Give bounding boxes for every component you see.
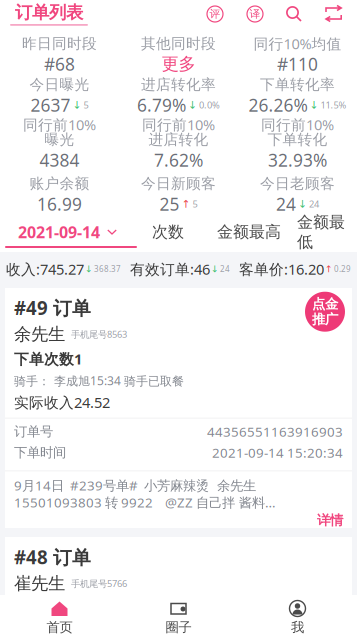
staticText: 26.26% [248,93,307,116]
button[interactable]: 次数 [152,212,217,252]
staticText: 11.5% [320,99,346,111]
staticText: 余先生 [14,324,65,345]
button[interactable]: 刷新 [325,6,342,22]
staticText: 进店转化率 [141,75,216,93]
staticText: 其他同时段 [141,34,216,52]
staticText: ↓ [309,99,318,111]
staticText: 进店转化 [148,130,208,148]
staticText: 7.62% [154,148,203,171]
staticText: 次数 [152,222,184,242]
staticText: 骑手： 李成旭15:34 骑手已取餐 [14,373,184,389]
staticText: 客单价:16.20 [239,259,324,279]
staticText: 24 [276,192,296,215]
staticText: 手机尾号5766 [71,577,127,590]
staticText: 首页 [46,619,72,635]
staticText: 2637 [30,93,70,116]
staticText: 今日新顾客 [141,174,216,192]
button[interactable]: 评价 [205,4,225,24]
staticText: 24 [309,198,319,210]
staticText: 5 [192,198,197,210]
staticText: 译 [249,7,260,20]
staticText: 同行前10% [23,115,96,134]
staticText: 下单转化率 [260,75,335,93]
button[interactable]: #49 订单 [5,288,352,528]
staticText: 25 [159,192,179,215]
staticText: 下单时间 [14,444,66,461]
staticText: 账户余额 [29,174,89,192]
staticText: 2021-09-14 15:20:34 [212,444,343,461]
staticText: 16.99 [37,192,82,215]
staticText: 昨日同时段 [22,34,97,52]
staticText: 15501093803 转 9922 @ZZ 自己拌 酱料… [14,493,276,511]
staticText: 同行10%均值 [253,34,341,53]
staticText: 曝光 [44,130,74,148]
button[interactable]: 2021-09-14 [0,212,152,252]
staticText: 32.93% [268,148,327,171]
staticText: 订单号 [14,423,53,440]
staticText: 今日老顾客 [260,174,335,192]
staticText: ↓ [72,99,81,111]
staticText: 今日曝光 [29,75,89,93]
staticText: 同行前10% [261,115,334,134]
staticText: 圈子 [165,619,191,635]
button[interactable]: 首页 [0,595,119,639]
button[interactable]: 金额最低 [297,212,357,252]
staticText: 实际收入24.52 [14,392,110,412]
staticText: #110 [277,52,318,75]
button[interactable]: 搜索 [285,5,303,23]
button[interactable]: 圈子 [119,595,238,639]
staticText: 有效订单:46 [130,259,210,279]
staticText: 金额最高 [217,222,281,242]
staticText: 收入:745.27 [6,259,84,279]
button[interactable]: #48 订单 [5,537,352,595]
staticText: ↑ [181,198,190,210]
staticText: #48 订单 [14,545,91,569]
staticText: 44356551163916903 [207,423,343,440]
staticText: 详情 [317,512,343,528]
staticText: ↑ [325,264,333,274]
staticText: 推广 [312,311,338,328]
staticText: 4384 [39,148,79,171]
staticText: 崔先生 [14,573,65,594]
staticText: 手机尾号8563 [71,328,127,340]
staticText: 6.79% [137,93,186,116]
staticText: 评 [209,7,220,20]
staticText: 0.0% [199,99,220,111]
staticText: #68 [44,52,75,75]
staticText: 我 [291,619,304,635]
staticText: 金额最低 [297,212,345,252]
staticText: 0.29 [334,264,351,274]
staticText: ↓ [188,99,197,111]
staticText: 下单次数1 [14,349,82,368]
staticText: ↓ [211,264,219,274]
staticText: 更多 [161,53,195,75]
staticText: 同行前10% [142,115,215,134]
staticText: ↓ [298,198,307,210]
button[interactable]: 金额最高 [217,212,297,252]
staticText: 24 [220,264,230,274]
staticText: 点金 [312,296,338,312]
staticText: 下单转化 [267,130,327,148]
staticText: 368.37 [94,264,121,274]
staticText: 订单列表 [15,2,83,23]
button[interactable]: 我 [238,595,357,639]
staticText: 2021-09-14 [18,221,100,243]
button[interactable]: 订单列表 [0,0,93,28]
button[interactable]: 翻译 [245,4,265,24]
staticText: 9月14日 #239号单# 小芳麻辣烫 余先生 [14,476,256,494]
staticText: ↓ [85,264,93,274]
staticText: #49 订单 [14,295,91,320]
staticText: 5 [83,99,88,111]
